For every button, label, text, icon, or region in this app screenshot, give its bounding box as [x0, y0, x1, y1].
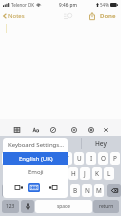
button[interactable]: Dictate [21, 200, 34, 213]
button[interactable]: Shift [2, 184, 18, 197]
staticText: space [57, 203, 70, 210]
staticText: N [85, 186, 90, 195]
button[interactable]: T [50, 152, 60, 165]
button[interactable]: W [14, 152, 24, 165]
button[interactable]: Hey [81, 136, 121, 151]
staticText: 54% [100, 2, 109, 8]
button[interactable]: Keyboard layout [13, 183, 25, 192]
button[interactable]: J [80, 167, 90, 180]
staticText: O [101, 154, 106, 163]
button[interactable]: U [74, 152, 84, 165]
staticText: U [77, 154, 82, 163]
staticText: return [99, 203, 114, 210]
button[interactable]: Text format [30, 124, 41, 135]
staticText: 9:46 pm [59, 2, 77, 8]
button[interactable]: X [34, 184, 44, 197]
staticText: P [113, 154, 117, 163]
button[interactable]: return [93, 200, 119, 213]
staticText: E [29, 154, 33, 163]
button[interactable]: Markup [85, 124, 96, 135]
staticText: C [49, 186, 54, 195]
button[interactable]: Q [2, 152, 12, 165]
button[interactable]: Done [98, 8, 118, 23]
button[interactable]: Keyboard layout [28, 183, 40, 192]
button[interactable]: Z [22, 184, 32, 197]
staticText: X [37, 186, 41, 195]
staticText: I [90, 154, 93, 163]
button[interactable]: K [92, 167, 102, 180]
staticText: K [95, 169, 99, 178]
button[interactable]: Checklist [47, 124, 58, 135]
button[interactable]: Y [62, 152, 72, 165]
staticText: B [73, 186, 78, 195]
staticText: R [41, 154, 45, 163]
button[interactable]: S [20, 167, 30, 180]
staticText: Notes [8, 12, 25, 20]
staticText: English (UK) [19, 155, 53, 163]
staticText: J [84, 169, 86, 178]
staticText: Z [25, 186, 29, 195]
button[interactable]: D [32, 167, 42, 180]
staticText: Keyboard Settings… [8, 141, 64, 149]
button[interactable]: Emoji [3, 165, 68, 178]
staticText: L [107, 169, 111, 178]
button[interactable]: Hide keyboard [100, 124, 111, 135]
staticText: Y [65, 154, 69, 163]
button[interactable]: P [110, 152, 120, 165]
button[interactable]: E [26, 152, 36, 165]
staticText: W [16, 154, 22, 163]
button[interactable]: English (UK) [3, 152, 68, 165]
button[interactable]: More options [61, 9, 75, 22]
staticText: M [96, 186, 102, 195]
staticText: Emoji [28, 168, 44, 176]
button[interactable]: N [82, 184, 92, 197]
button[interactable]: B [70, 184, 80, 197]
button[interactable]: Share [85, 8, 98, 23]
button[interactable]: I [86, 152, 96, 165]
button[interactable]: Keyboard layout [47, 183, 59, 192]
button[interactable]: Notes [2, 9, 26, 23]
button[interactable]: Add [68, 124, 79, 135]
button[interactable]: O [98, 152, 108, 165]
button[interactable]: 123 [2, 200, 19, 213]
button[interactable]: H [68, 167, 78, 180]
button[interactable]: space [35, 200, 92, 213]
button[interactable]: Backspace [107, 184, 121, 197]
button[interactable]: L [104, 167, 114, 180]
button[interactable]: Keyboard Settings… [3, 138, 68, 152]
staticText: Done [100, 12, 116, 20]
staticText: 123 [6, 203, 15, 210]
button[interactable]: C [46, 184, 56, 197]
button[interactable]: R [38, 152, 48, 165]
staticText: Telenor DK [11, 2, 35, 8]
staticText: D [35, 169, 40, 178]
staticText: H [71, 169, 76, 178]
staticText: Hey [95, 139, 107, 148]
button[interactable]: M [94, 184, 104, 197]
button[interactable]: Table [11, 124, 22, 135]
